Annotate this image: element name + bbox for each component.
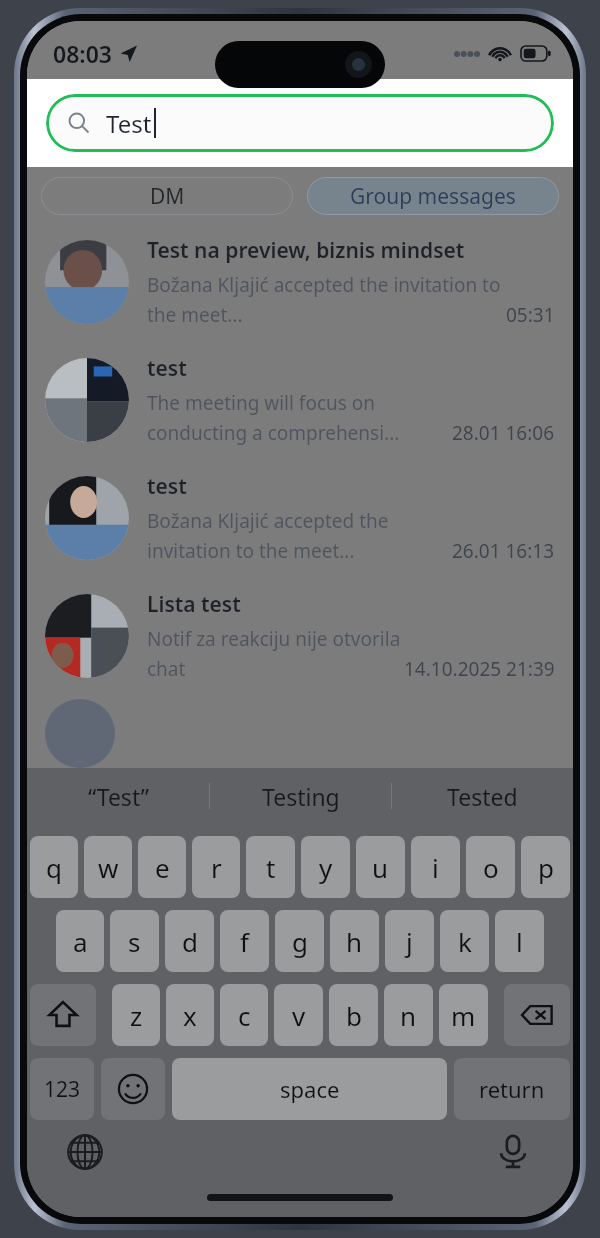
staticText: 08:03 — [53, 38, 112, 69]
button[interactable]: Backspace — [504, 984, 570, 1046]
staticText: Testing — [262, 781, 340, 812]
button[interactable]: DM — [41, 177, 293, 215]
staticText: 123 — [44, 1075, 81, 1104]
button[interactable]: 123 — [30, 1058, 94, 1120]
staticText: invitation to the meet... — [147, 538, 355, 564]
staticText: Test — [106, 107, 152, 140]
button[interactable]: c — [220, 984, 268, 1046]
staticText: x — [183, 998, 197, 1033]
button[interactable]: Testing — [210, 768, 391, 824]
button[interactable]: u — [356, 836, 405, 898]
button[interactable]: t — [246, 836, 295, 898]
staticText: chat — [147, 656, 186, 682]
staticText: j — [406, 924, 413, 959]
button[interactable]: b — [329, 984, 378, 1046]
staticText: test — [147, 354, 187, 383]
staticText: the meet... — [147, 302, 243, 328]
button[interactable]: f — [220, 910, 269, 972]
staticText: e — [155, 850, 170, 885]
staticText: The meeting will focus on — [147, 390, 376, 416]
button[interactable]: p — [521, 836, 570, 898]
staticText: Lista test — [147, 590, 241, 619]
button[interactable]: q — [30, 836, 78, 898]
button[interactable]: r — [192, 836, 240, 898]
staticText: return — [479, 1074, 545, 1104]
staticText: 26.01 16:13 — [452, 538, 555, 564]
staticText: space — [280, 1074, 340, 1104]
staticText: a — [73, 924, 88, 959]
staticText: z — [130, 998, 143, 1033]
staticText: m — [451, 998, 476, 1033]
staticText: r — [211, 850, 222, 885]
staticText: Božana Kljajić accepted the invitation t… — [147, 272, 501, 298]
staticText: l — [516, 924, 523, 959]
staticText: w — [98, 850, 119, 885]
staticText: o — [483, 850, 499, 885]
button[interactable]: i — [411, 836, 460, 898]
button[interactable]: h — [330, 910, 379, 972]
button[interactable]: return — [454, 1058, 570, 1120]
button[interactable]: w — [84, 836, 132, 898]
staticText: b — [346, 998, 362, 1033]
button[interactable]: v — [274, 984, 323, 1046]
staticText: i — [432, 850, 439, 885]
button[interactable]: k — [440, 910, 489, 972]
button[interactable]: Emoji — [101, 1058, 165, 1120]
button[interactable]: o — [466, 836, 515, 898]
staticText: Group messages — [350, 182, 516, 211]
button[interactable]: Change keyboard — [65, 1132, 105, 1172]
staticText: s — [128, 924, 141, 959]
button[interactable]: m — [439, 984, 488, 1046]
button[interactable]: a — [56, 910, 104, 972]
button[interactable]: z — [112, 984, 160, 1046]
button[interactable]: l — [495, 910, 544, 972]
button[interactable]: Lista test — [27, 577, 573, 695]
button[interactable]: e — [138, 836, 186, 898]
staticText: 05:31 — [506, 302, 555, 328]
staticText: test — [147, 472, 187, 501]
button[interactable]: Group messages — [307, 177, 559, 215]
button[interactable]: n — [384, 984, 433, 1046]
button[interactable]: Shift — [30, 984, 96, 1046]
staticText: h — [346, 924, 363, 959]
button[interactable]: test — [27, 459, 573, 577]
button[interactable]: y — [301, 836, 350, 898]
staticText: y — [319, 850, 333, 885]
staticText: Notif za reakciju nije otvorila — [147, 626, 401, 652]
button[interactable]: d — [165, 910, 214, 972]
staticText: Tested — [447, 781, 518, 812]
staticText: DM — [150, 182, 185, 211]
button[interactable]: “Test” — [27, 768, 209, 824]
button[interactable]: g — [275, 910, 324, 972]
staticText: d — [182, 924, 198, 959]
button[interactable]: Test — [46, 94, 554, 152]
staticText: 14.10.2025 21:39 — [404, 656, 555, 682]
staticText: q — [46, 850, 62, 885]
staticText: 28.01 16:06 — [452, 420, 555, 446]
staticText: c — [238, 998, 251, 1033]
staticText: conducting a comprehensi... — [147, 420, 400, 446]
button[interactable]: space — [172, 1058, 447, 1120]
staticText: Test na preview, biznis mindset — [147, 236, 465, 265]
button[interactable]: s — [110, 910, 159, 972]
button[interactable]: Test na preview, biznis mindset — [27, 223, 573, 341]
staticText: t — [266, 850, 276, 885]
staticText: v — [292, 998, 306, 1033]
staticText: n — [400, 998, 417, 1033]
staticText: k — [458, 924, 472, 959]
staticText: g — [292, 924, 308, 959]
button[interactable]: j — [385, 910, 434, 972]
staticText: p — [538, 850, 554, 885]
button[interactable]: test — [27, 341, 573, 459]
staticText: u — [372, 850, 389, 885]
staticText: Božana Kljajić accepted the — [147, 508, 389, 534]
button[interactable]: x — [166, 984, 214, 1046]
button[interactable]: Tested — [392, 768, 573, 824]
button[interactable]: Dictation — [495, 1133, 531, 1169]
staticText: f — [240, 924, 249, 959]
staticText: “Test” — [88, 781, 149, 812]
